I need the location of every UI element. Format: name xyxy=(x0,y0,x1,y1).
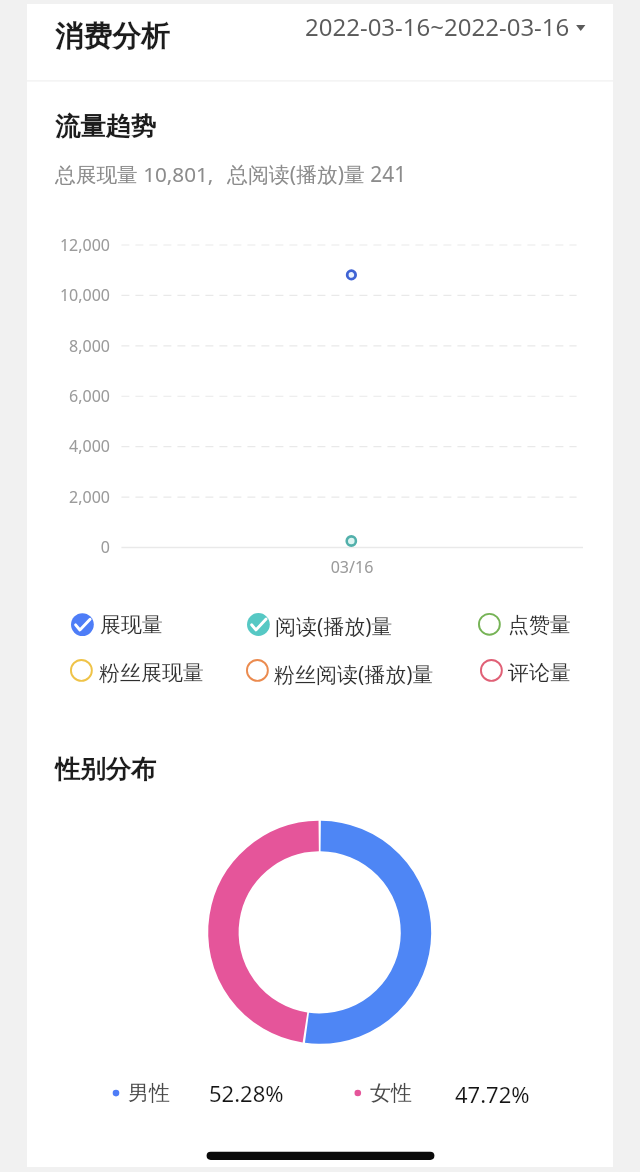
staticText: 0 xyxy=(40,536,110,558)
button[interactable]: 粉丝展现量 xyxy=(70,658,204,684)
staticText: 6,000 xyxy=(40,385,110,407)
button[interactable]: 点赞量 xyxy=(478,611,571,637)
staticText: 8,000 xyxy=(40,335,110,357)
button[interactable]: 展现量 xyxy=(71,611,163,637)
staticText: 52.28% xyxy=(209,1078,284,1108)
staticText: 阅读(播放)量 xyxy=(275,612,393,638)
staticText: 2,000 xyxy=(40,486,110,508)
staticText: 总阅读(播放)量 241 xyxy=(227,160,407,189)
staticText: 点赞量 xyxy=(508,612,571,638)
staticText: 展现量 xyxy=(100,612,163,638)
staticText: 粉丝展现量 xyxy=(99,660,204,686)
staticText: 12,000 xyxy=(40,234,110,256)
button[interactable]: 阅读(播放)量 xyxy=(247,611,394,637)
staticText: 性别分布 xyxy=(55,754,157,786)
staticText: 03/16 xyxy=(302,556,402,578)
staticText: 女性 xyxy=(370,1080,412,1106)
staticText: 4,000 xyxy=(40,435,110,457)
staticText: 流量趋势 xyxy=(55,111,157,143)
staticText: 总展现量 10,801, xyxy=(55,160,214,188)
staticText: 消费分析 xyxy=(55,18,170,54)
button[interactable]: Select date range xyxy=(300,6,590,42)
staticText: 评论量 xyxy=(508,660,571,686)
staticText: 男性 xyxy=(128,1080,170,1106)
staticText: 粉丝阅读(播放)量 xyxy=(274,660,434,686)
staticText: 2022-03-16~2022-03-16 xyxy=(305,10,570,43)
button[interactable]: 评论量 xyxy=(480,658,571,684)
staticText: 47.72% xyxy=(455,1079,530,1109)
button[interactable]: 粉丝阅读(播放)量 xyxy=(246,658,435,684)
staticText: 10,000 xyxy=(40,284,110,306)
